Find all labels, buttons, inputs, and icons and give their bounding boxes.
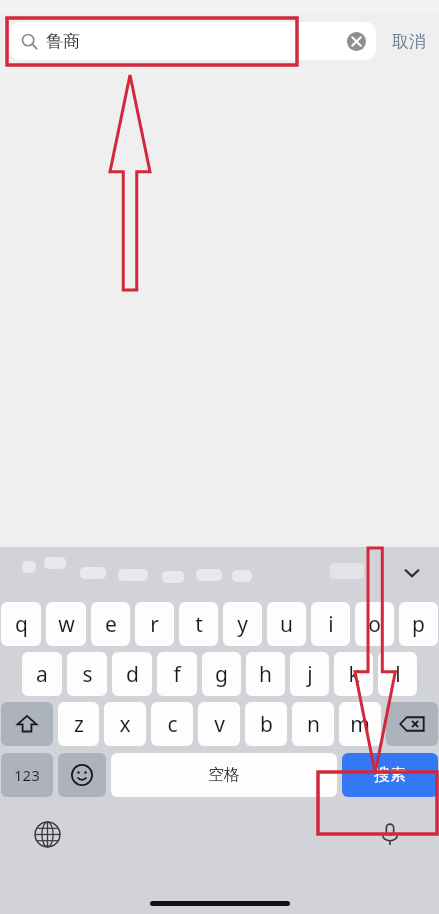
button[interactable]: Shift bbox=[1, 702, 53, 746]
button[interactable]: i bbox=[311, 602, 350, 646]
button[interactable]: x bbox=[104, 702, 146, 746]
staticText: x bbox=[119, 710, 131, 739]
button[interactable]: w bbox=[46, 602, 86, 646]
staticText: v bbox=[214, 710, 225, 739]
staticText: p bbox=[412, 610, 425, 639]
button[interactable]: Voice input bbox=[373, 817, 407, 851]
button[interactable]: p bbox=[399, 602, 438, 646]
button[interactable]: g bbox=[202, 652, 241, 696]
button[interactable]: u bbox=[267, 602, 306, 646]
staticText: t bbox=[195, 610, 203, 639]
button[interactable]: Clear text bbox=[341, 26, 371, 56]
button[interactable]: v bbox=[198, 702, 240, 746]
staticText: 搜索 bbox=[374, 765, 406, 785]
button[interactable]: m bbox=[339, 702, 381, 746]
button[interactable]: q bbox=[1, 602, 41, 646]
staticText: g bbox=[215, 660, 228, 689]
staticText: 取消 bbox=[392, 31, 426, 52]
button[interactable]: r bbox=[135, 602, 174, 646]
button[interactable]: c bbox=[151, 702, 193, 746]
button[interactable]: d bbox=[112, 652, 152, 696]
button[interactable]: b bbox=[245, 702, 287, 746]
staticText: m bbox=[350, 710, 370, 739]
button[interactable]: y bbox=[223, 602, 262, 646]
staticText: j bbox=[307, 660, 313, 689]
button[interactable]: 123 bbox=[1, 753, 53, 797]
staticText: o bbox=[368, 610, 381, 639]
button[interactable]: Change keyboard bbox=[30, 817, 64, 851]
button[interactable]: 搜索 bbox=[342, 753, 438, 797]
staticText: r bbox=[150, 610, 159, 639]
staticText: e bbox=[105, 610, 117, 639]
staticText: s bbox=[82, 660, 93, 689]
staticText: b bbox=[260, 710, 273, 739]
staticText: z bbox=[74, 710, 84, 739]
button[interactable]: l bbox=[378, 652, 417, 696]
button[interactable]: o bbox=[355, 602, 394, 646]
button[interactable]: j bbox=[290, 652, 329, 696]
button[interactable]: 空格 bbox=[111, 753, 337, 797]
button[interactable]: a bbox=[22, 652, 62, 696]
staticText: k bbox=[348, 660, 360, 689]
button[interactable]: 取消 bbox=[385, 22, 433, 60]
button[interactable]: e bbox=[91, 602, 130, 646]
button[interactable]: f bbox=[157, 652, 197, 696]
staticText: y bbox=[237, 610, 248, 639]
button[interactable]: Delete bbox=[386, 702, 438, 746]
staticText: q bbox=[15, 610, 28, 639]
button[interactable]: n bbox=[292, 702, 334, 746]
staticText: f bbox=[173, 660, 181, 689]
button[interactable]: Hide predictions bbox=[395, 556, 429, 590]
staticText: u bbox=[280, 610, 293, 639]
staticText: h bbox=[259, 660, 272, 689]
staticText: 空格 bbox=[208, 765, 240, 785]
staticText: n bbox=[307, 710, 320, 739]
button[interactable]: 鲁商 bbox=[10, 22, 376, 60]
staticText: 鲁商 bbox=[46, 31, 80, 52]
staticText: i bbox=[328, 610, 334, 639]
staticText: a bbox=[36, 660, 48, 689]
button[interactable]: t bbox=[179, 602, 218, 646]
button[interactable]: s bbox=[67, 652, 107, 696]
button[interactable]: k bbox=[334, 652, 373, 696]
staticText: d bbox=[126, 660, 139, 689]
staticText: 123 bbox=[14, 765, 40, 785]
staticText: c bbox=[167, 710, 178, 739]
button[interactable]: z bbox=[58, 702, 99, 746]
staticText: l bbox=[395, 660, 401, 689]
staticText: w bbox=[58, 610, 75, 639]
button[interactable]: h bbox=[246, 652, 285, 696]
button[interactable]: Emoji bbox=[58, 753, 106, 797]
